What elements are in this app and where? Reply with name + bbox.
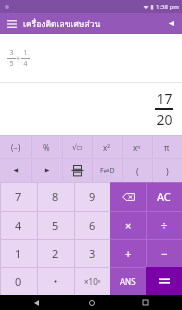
- button[interactable]: [37, 267, 74, 295]
- staticText: 4: [23, 59, 28, 69]
- button[interactable]: 0: [0, 267, 37, 295]
- staticText: x²: [103, 142, 111, 153]
- staticText: ANS: [120, 276, 136, 287]
- staticText: 1: [15, 246, 22, 261]
- staticText: √▫: [72, 143, 83, 152]
- button[interactable]: √▫: [62, 136, 92, 158]
- staticText: ×10ˣ: [84, 276, 101, 287]
- button[interactable]: 7: [0, 182, 37, 211]
- staticText: +: [125, 246, 132, 261]
- staticText: xⁿ: [133, 142, 141, 153]
- staticText: (: [136, 165, 139, 177]
- button[interactable]: Back: [30, 296, 43, 309]
- staticText: ÷: [161, 218, 168, 233]
- staticText: 3: [89, 246, 96, 261]
- button[interactable]: ANS: [110, 267, 146, 295]
- button[interactable]: %: [31, 136, 62, 158]
- button[interactable]: 8: [37, 182, 74, 211]
- button[interactable]: ×: [110, 211, 146, 239]
- button[interactable]: 9: [74, 182, 110, 211]
- button[interactable]: [0, 159, 31, 182]
- button[interactable]: ÷: [146, 211, 182, 239]
- staticText: F⇌D: [100, 166, 115, 176]
- button[interactable]: Equals: [146, 267, 182, 295]
- staticText: 9: [89, 189, 96, 204]
- staticText: +: [16, 54, 21, 64]
- staticText: π: [164, 142, 170, 153]
- staticText: 4: [15, 218, 22, 233]
- staticText: 2: [52, 246, 59, 261]
- button[interactable]: 6: [74, 211, 110, 239]
- button[interactable]: π: [152, 136, 182, 158]
- button[interactable]: xⁿ: [122, 136, 152, 158]
- button[interactable]: ): [152, 159, 182, 182]
- button[interactable]: Home: [85, 296, 98, 309]
- staticText: 5: [9, 59, 14, 69]
- button[interactable]: [62, 159, 92, 182]
- staticText: ): [166, 165, 169, 177]
- staticText: 3: [9, 48, 14, 58]
- staticText: %: [43, 142, 50, 153]
- button[interactable]: F⇌D: [92, 159, 122, 182]
- button[interactable]: Back: [164, 16, 179, 31]
- staticText: −: [161, 246, 168, 261]
- button[interactable]: AC: [146, 182, 182, 211]
- staticText: 1: [23, 48, 28, 58]
- button[interactable]: x²: [92, 136, 122, 158]
- staticText: 17: [156, 89, 173, 108]
- staticText: 20: [156, 110, 173, 129]
- button[interactable]: [31, 159, 62, 182]
- staticText: 6: [89, 218, 96, 233]
- staticText: 1:38 pm: [156, 3, 179, 11]
- button[interactable]: Delete: [110, 182, 146, 211]
- staticText: ×: [125, 218, 132, 233]
- button[interactable]: 2: [37, 239, 74, 267]
- staticText: 7: [15, 189, 22, 204]
- button[interactable]: ×10ˣ: [74, 267, 110, 295]
- button[interactable]: (: [122, 159, 152, 182]
- staticText: 5: [52, 218, 59, 233]
- button[interactable]: (−): [0, 136, 31, 158]
- button[interactable]: +: [110, 239, 146, 267]
- staticText: 0: [15, 274, 22, 289]
- button[interactable]: 5: [37, 211, 74, 239]
- button[interactable]: −: [146, 239, 182, 267]
- button[interactable]: Recent apps: [139, 296, 152, 309]
- button[interactable]: 3: [74, 239, 110, 267]
- button[interactable]: 4: [0, 211, 37, 239]
- staticText: (−): [11, 142, 21, 153]
- staticText: AC: [157, 189, 171, 204]
- button[interactable]: 1: [0, 239, 37, 267]
- staticText: 8: [52, 189, 59, 204]
- button[interactable]: Open navigation menu: [4, 16, 19, 31]
- staticText: เครื่องคิดเลขเศษส่วน: [23, 17, 101, 31]
